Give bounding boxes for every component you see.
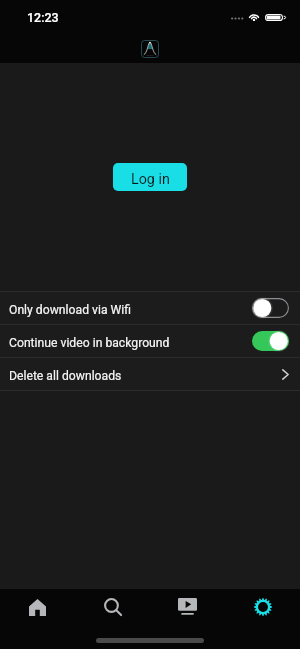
staticText: 12:23 <box>27 10 59 25</box>
button[interactable]: Continue video in background <box>0 325 300 357</box>
button[interactable]: Off <box>252 298 289 318</box>
button[interactable]: On <box>252 331 289 351</box>
staticText: Continue video in background <box>9 336 170 350</box>
staticText: Delete all downloads <box>9 369 122 383</box>
staticText: Only download via Wifi <box>9 303 132 317</box>
button[interactable]: Delete all downloads <box>0 358 300 390</box>
button[interactable]: Settings <box>225 589 300 625</box>
other: Open <box>282 369 289 380</box>
staticText: Log in <box>131 171 170 188</box>
button[interactable]: Search <box>75 589 150 625</box>
button[interactable]: Log in <box>113 163 187 191</box>
button[interactable]: Videos <box>150 589 225 625</box>
button[interactable]: Home <box>0 589 75 625</box>
button[interactable]: Only download via Wifi <box>0 292 300 324</box>
